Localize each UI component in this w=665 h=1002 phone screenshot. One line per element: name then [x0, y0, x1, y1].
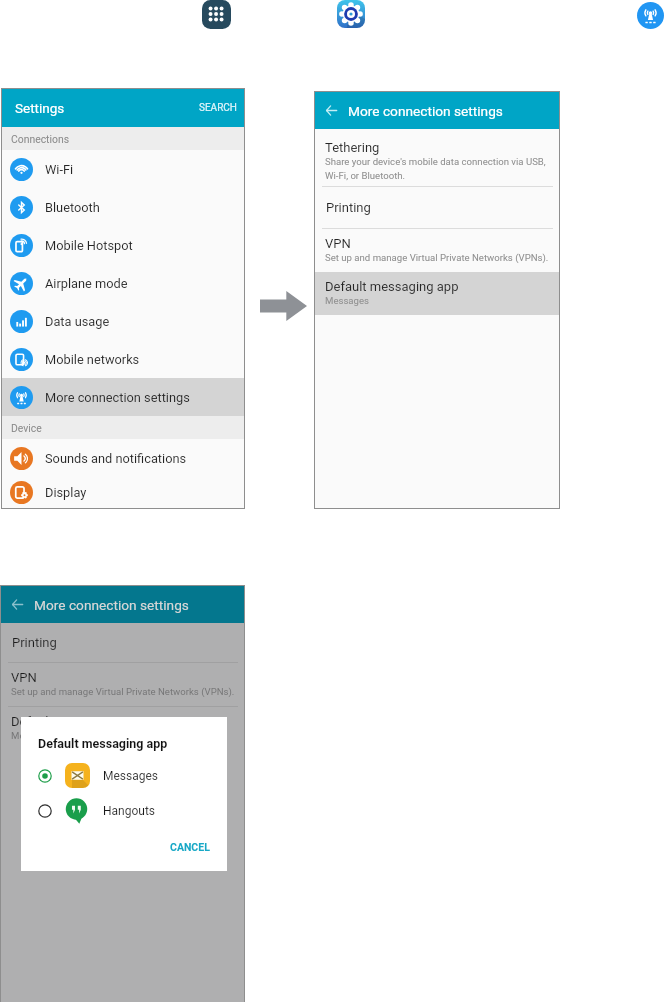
staticText: More connection settings [34, 597, 189, 613]
button[interactable]: Printing [1, 623, 244, 662]
other: Leads to [260, 290, 307, 322]
button[interactable]: Hangouts [21, 797, 227, 824]
button[interactable]: Default messaging app [1, 707, 244, 750]
staticText: Default messaging app [325, 279, 459, 294]
button[interactable]: Sounds and notifications [2, 439, 244, 477]
staticText: CANCEL [170, 841, 210, 853]
staticText: Data usage [45, 314, 110, 329]
staticText: Set up and manage Virtual Private Networ… [325, 252, 549, 263]
staticText: Device [11, 422, 42, 434]
button[interactable]: Airplane mode [2, 264, 244, 302]
staticText: Tethering [325, 140, 380, 155]
staticText: More connection settings [45, 390, 190, 405]
button[interactable]: Bluetooth [2, 188, 244, 226]
staticText: Wi-Fi [45, 162, 74, 177]
button[interactable]: Settings [337, 0, 365, 28]
staticText: Connections [11, 133, 70, 145]
staticText: Default messaging app [38, 736, 168, 751]
staticText: Airplane mode [45, 276, 128, 291]
button[interactable]: SEARCH [199, 102, 237, 114]
staticText: Messages [325, 295, 370, 306]
button[interactable]: Default messaging app [315, 272, 559, 315]
staticText: Display [45, 485, 87, 500]
button[interactable]: Data usage [2, 302, 244, 340]
staticText: Default messaging app [11, 714, 145, 729]
staticText: Settings [15, 100, 65, 116]
staticText: Messages [103, 769, 159, 783]
button[interactable]: Back [12, 599, 23, 610]
button[interactable]: Tethering [315, 129, 559, 186]
staticText: Mobile networks [45, 352, 140, 367]
button[interactable]: More connection settings [2, 378, 244, 416]
staticText: Hangouts [103, 804, 156, 818]
button[interactable]: VPN [1, 663, 244, 706]
button[interactable]: VPN [315, 229, 559, 272]
staticText: More connection settings [348, 103, 503, 119]
button[interactable]: Wi-Fi [2, 150, 244, 188]
staticText: Printing [326, 200, 371, 215]
button[interactable]: More connection settings [637, 2, 664, 29]
button[interactable]: Printing [315, 187, 559, 228]
staticText: Printing [12, 635, 57, 650]
staticText: Set up and manage Virtual Private Networ… [11, 686, 235, 697]
button[interactable]: CANCEL [164, 836, 216, 858]
button[interactable]: Mobile networks [2, 340, 244, 378]
staticText: Bluetooth [45, 200, 100, 215]
button[interactable]: Display [2, 477, 244, 508]
button[interactable]: Apps [202, 0, 231, 29]
staticText: VPN [11, 670, 37, 685]
staticText: Mobile Hotspot [45, 238, 133, 253]
button[interactable]: Back [326, 105, 337, 116]
staticText: Messages [11, 730, 56, 741]
staticText: VPN [325, 236, 351, 251]
button[interactable]: Mobile Hotspot [2, 226, 244, 264]
staticText: SEARCH [199, 102, 237, 114]
staticText: Sounds and notifications [45, 451, 187, 466]
staticText: Share your device's mobile data connecti… [325, 156, 546, 181]
button[interactable]: Messages [21, 762, 227, 789]
